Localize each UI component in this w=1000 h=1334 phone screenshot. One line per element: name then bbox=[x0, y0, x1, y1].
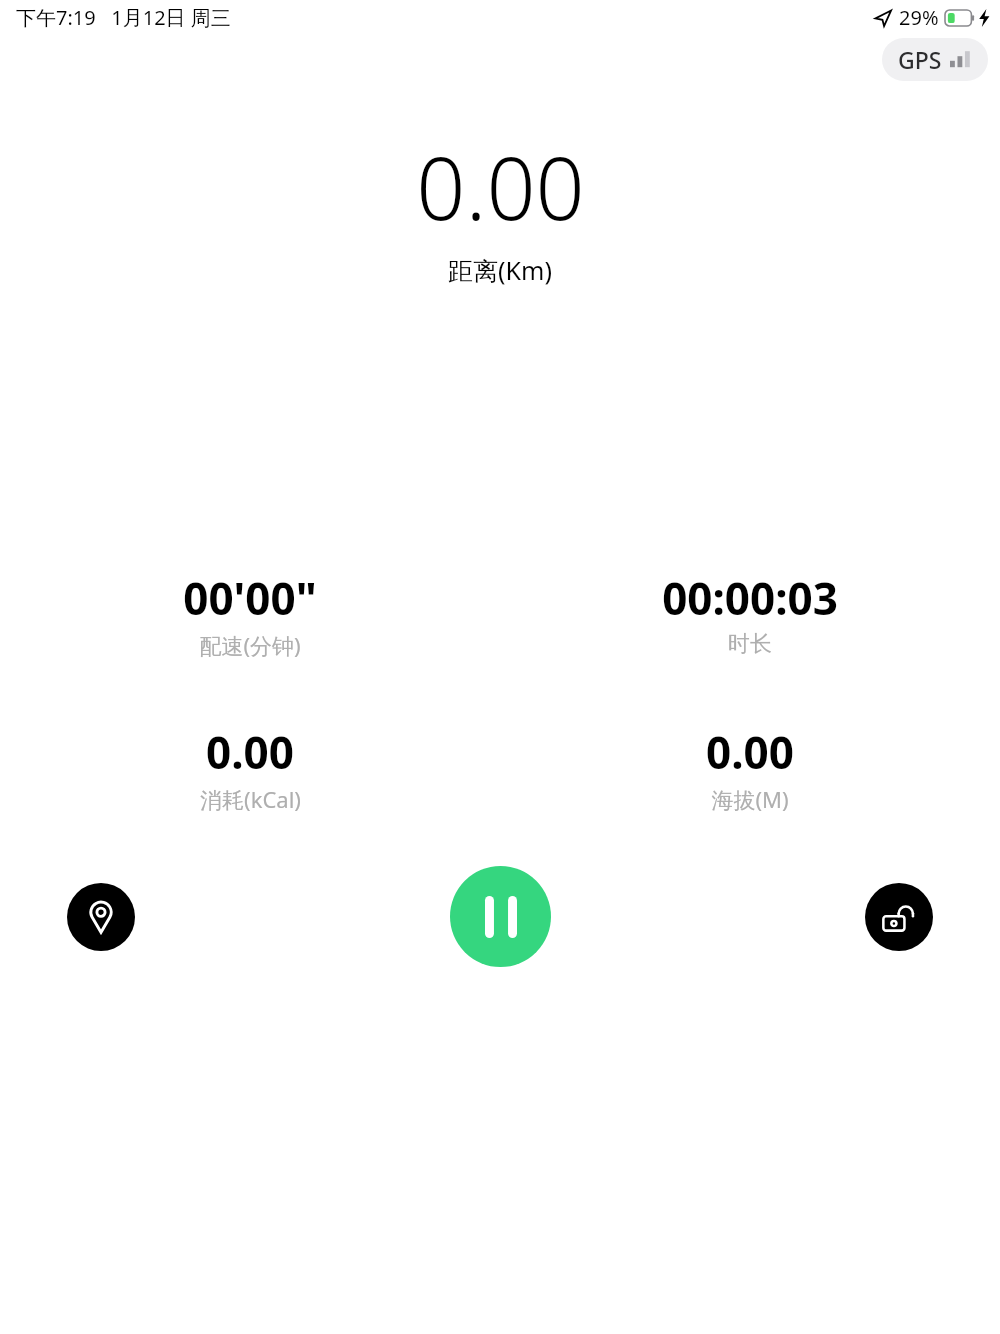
staticText: 0.00 bbox=[706, 722, 794, 782]
staticText: 下午7:19 1月12日 周三 bbox=[16, 4, 231, 31]
staticText: 消耗(kCal) bbox=[200, 784, 301, 814]
staticText: 配速(分钟) bbox=[199, 630, 301, 660]
staticText: 00:00:03 bbox=[662, 568, 838, 628]
button[interactable]: GPS bbox=[882, 38, 988, 81]
staticText: 距离(Km) bbox=[448, 253, 552, 287]
button[interactable]: Map location bbox=[67, 883, 135, 951]
staticText: GPS bbox=[898, 44, 942, 75]
staticText: 海拔(M) bbox=[711, 784, 789, 814]
staticText: 时长 bbox=[728, 630, 772, 658]
button[interactable]: Unlock bbox=[865, 883, 933, 951]
button[interactable]: Pause bbox=[450, 866, 551, 967]
staticText: 0.00 bbox=[416, 128, 585, 245]
staticText: 00'00" bbox=[183, 568, 317, 628]
staticText: 0.00 bbox=[206, 722, 294, 782]
staticText: 29% bbox=[899, 4, 939, 31]
